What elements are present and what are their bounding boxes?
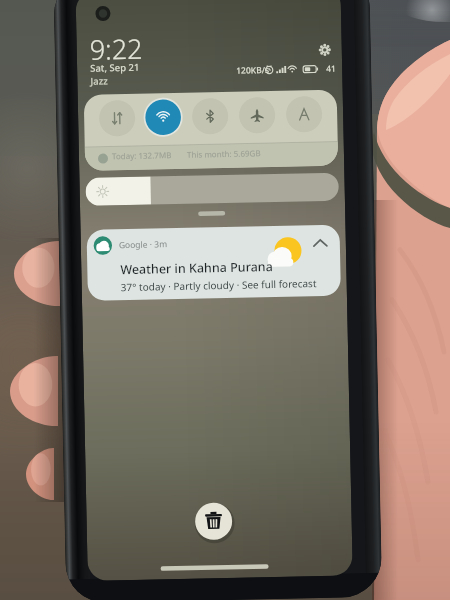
button[interactable]: Weather in Kahna Purana notification — [88, 224, 345, 301]
button[interactable]: Mobile data — [99, 102, 135, 138]
button[interactable]: Wi-Fi — [145, 101, 181, 138]
staticText: Google · 3m — [119, 238, 168, 251]
staticText: 120KB/s — [236, 64, 269, 77]
staticText: 9:22 — [89, 30, 143, 68]
button[interactable]: Collapse — [310, 232, 333, 255]
staticText: 37° today · Partly cloudy · See full for… — [121, 276, 317, 294]
staticText: Jazz — [90, 74, 109, 88]
staticText: Sat, Sep 21 — [90, 61, 140, 75]
staticText: Today: 132.7MB — [112, 149, 172, 161]
staticText: This month: 5.69GB — [187, 147, 261, 160]
button[interactable]: Auto brightness — [285, 98, 321, 135]
button[interactable]: Bluetooth — [192, 100, 228, 137]
button[interactable]: Airplane mode — [238, 99, 274, 136]
staticText: Weather in Kahna Purana — [120, 258, 273, 278]
button[interactable]: Clear all notifications — [195, 501, 234, 540]
staticText: 41 — [326, 63, 336, 75]
button[interactable]: Settings — [317, 41, 334, 58]
button[interactable]: Brightness — [87, 169, 343, 202]
